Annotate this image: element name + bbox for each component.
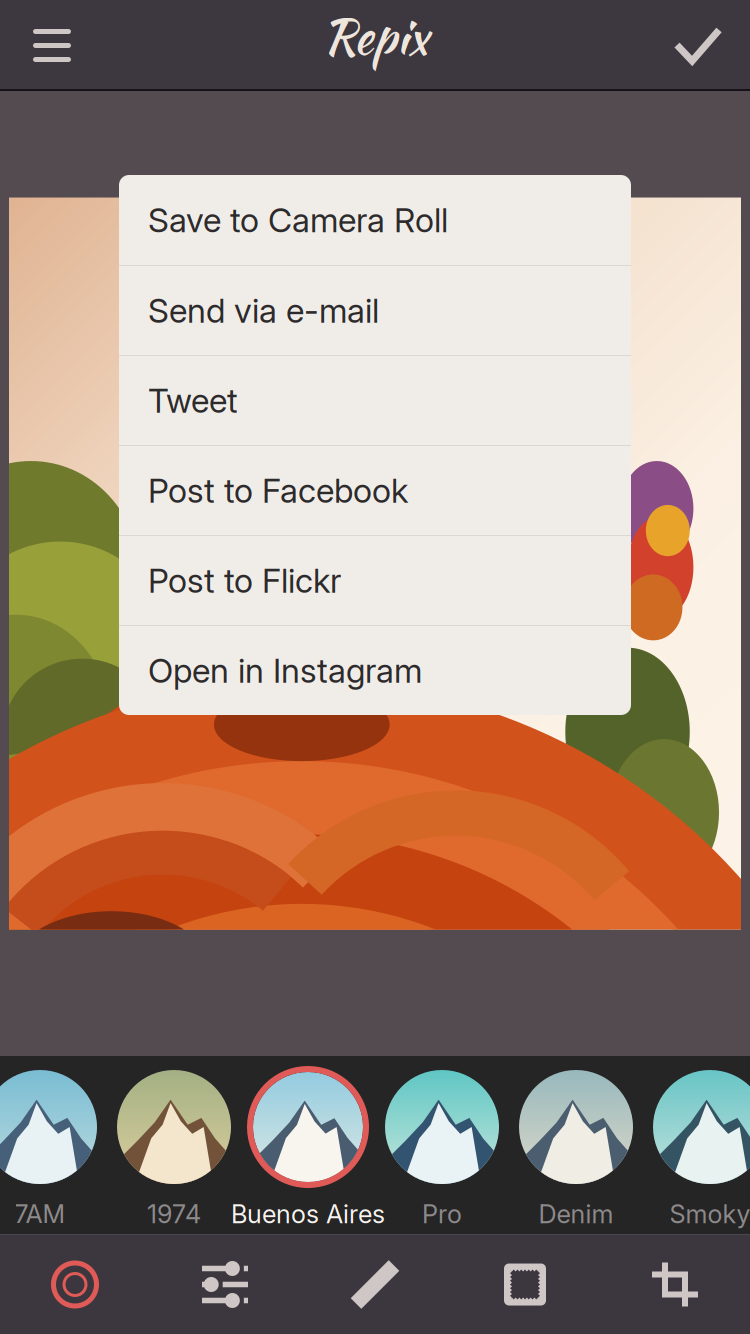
button[interactable]: Post to Facebook — [119, 445, 631, 535]
staticText: Open in Instagram — [148, 650, 422, 691]
button[interactable]: Crop — [600, 1235, 750, 1334]
button[interactable]: Adjustments — [150, 1235, 300, 1334]
button[interactable]: Buenos Aires — [241, 1056, 375, 1235]
button[interactable]: 1974 — [107, 1056, 241, 1235]
button[interactable]: 7AM — [0, 1056, 107, 1235]
staticText: Post to Flickr — [148, 560, 341, 601]
button[interactable]: Pro — [375, 1056, 509, 1235]
button[interactable]: Tweet — [119, 355, 631, 445]
staticText: Send via e-mail — [148, 290, 379, 331]
button[interactable]: Open in Instagram — [119, 625, 631, 715]
button[interactable]: Frames — [450, 1235, 600, 1334]
staticText: Save to Camera Roll — [148, 200, 448, 240]
button[interactable]: Done — [646, 1, 750, 90]
staticText: Denim — [538, 1199, 613, 1229]
staticText: Repix — [322, 2, 427, 71]
staticText: 1974 — [147, 1199, 201, 1229]
staticText: Post to Facebook — [148, 470, 408, 511]
staticText: Pro — [422, 1199, 462, 1229]
button[interactable]: Smoky — [643, 1056, 750, 1235]
staticText: Tweet — [148, 380, 238, 421]
button[interactable]: Draw — [300, 1235, 450, 1334]
staticText: 7AM — [14, 1199, 65, 1229]
button[interactable]: Send via e-mail — [119, 265, 631, 355]
staticText: Buenos Aires — [231, 1199, 385, 1229]
button[interactable]: Denim — [509, 1056, 643, 1235]
button[interactable]: Save to Camera Roll — [119, 175, 631, 265]
button[interactable]: Menu — [0, 1, 104, 90]
button[interactable]: Filters — [0, 1235, 150, 1334]
button[interactable]: Post to Flickr — [119, 535, 631, 625]
staticText: Smoky — [669, 1199, 750, 1229]
